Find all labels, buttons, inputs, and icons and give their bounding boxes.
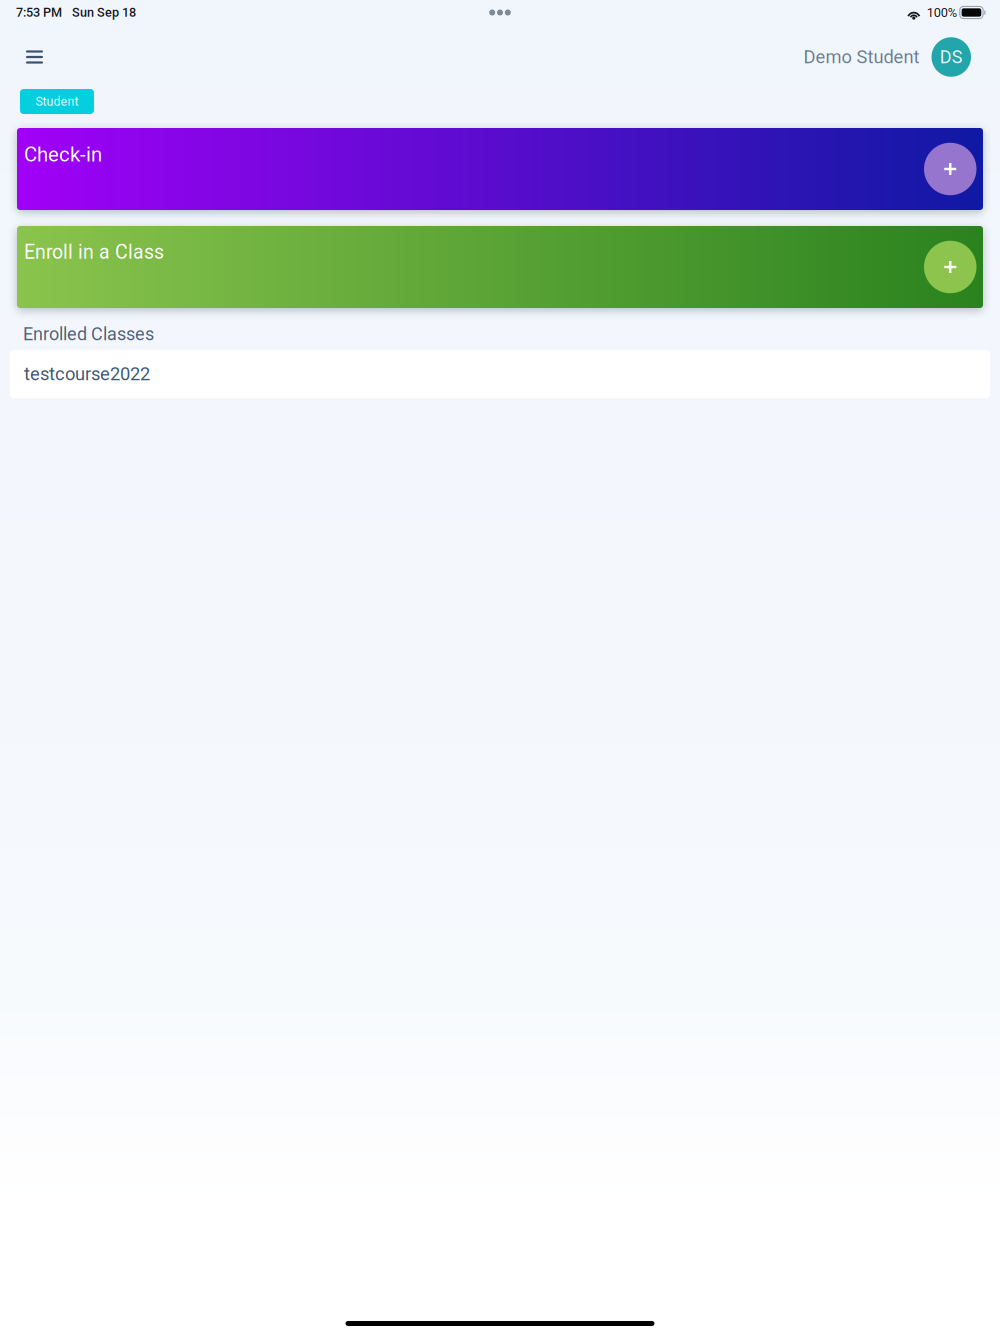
button[interactable]: Enroll in a Class bbox=[17, 226, 983, 308]
staticText: Sun Sep 18 bbox=[72, 5, 136, 20]
button[interactable]: testcourse2022 bbox=[10, 350, 990, 398]
staticText: Enrolled Classes bbox=[23, 323, 154, 345]
staticText: DS bbox=[940, 46, 963, 68]
button[interactable]: Check-in bbox=[17, 128, 983, 210]
staticText: testcourse2022 bbox=[24, 363, 150, 385]
staticText: 100% bbox=[927, 5, 957, 20]
staticText: Check-in bbox=[24, 143, 102, 167]
staticText: Enroll in a Class bbox=[24, 241, 164, 264]
button[interactable]: Student bbox=[20, 89, 94, 114]
button[interactable]: Demo Student bbox=[803, 31, 1000, 83]
staticText: 7:53 PM bbox=[16, 5, 62, 20]
staticText: Student bbox=[35, 94, 78, 109]
button[interactable]: Menu bbox=[0, 39, 57, 74]
staticText: Demo Student bbox=[803, 46, 919, 68]
